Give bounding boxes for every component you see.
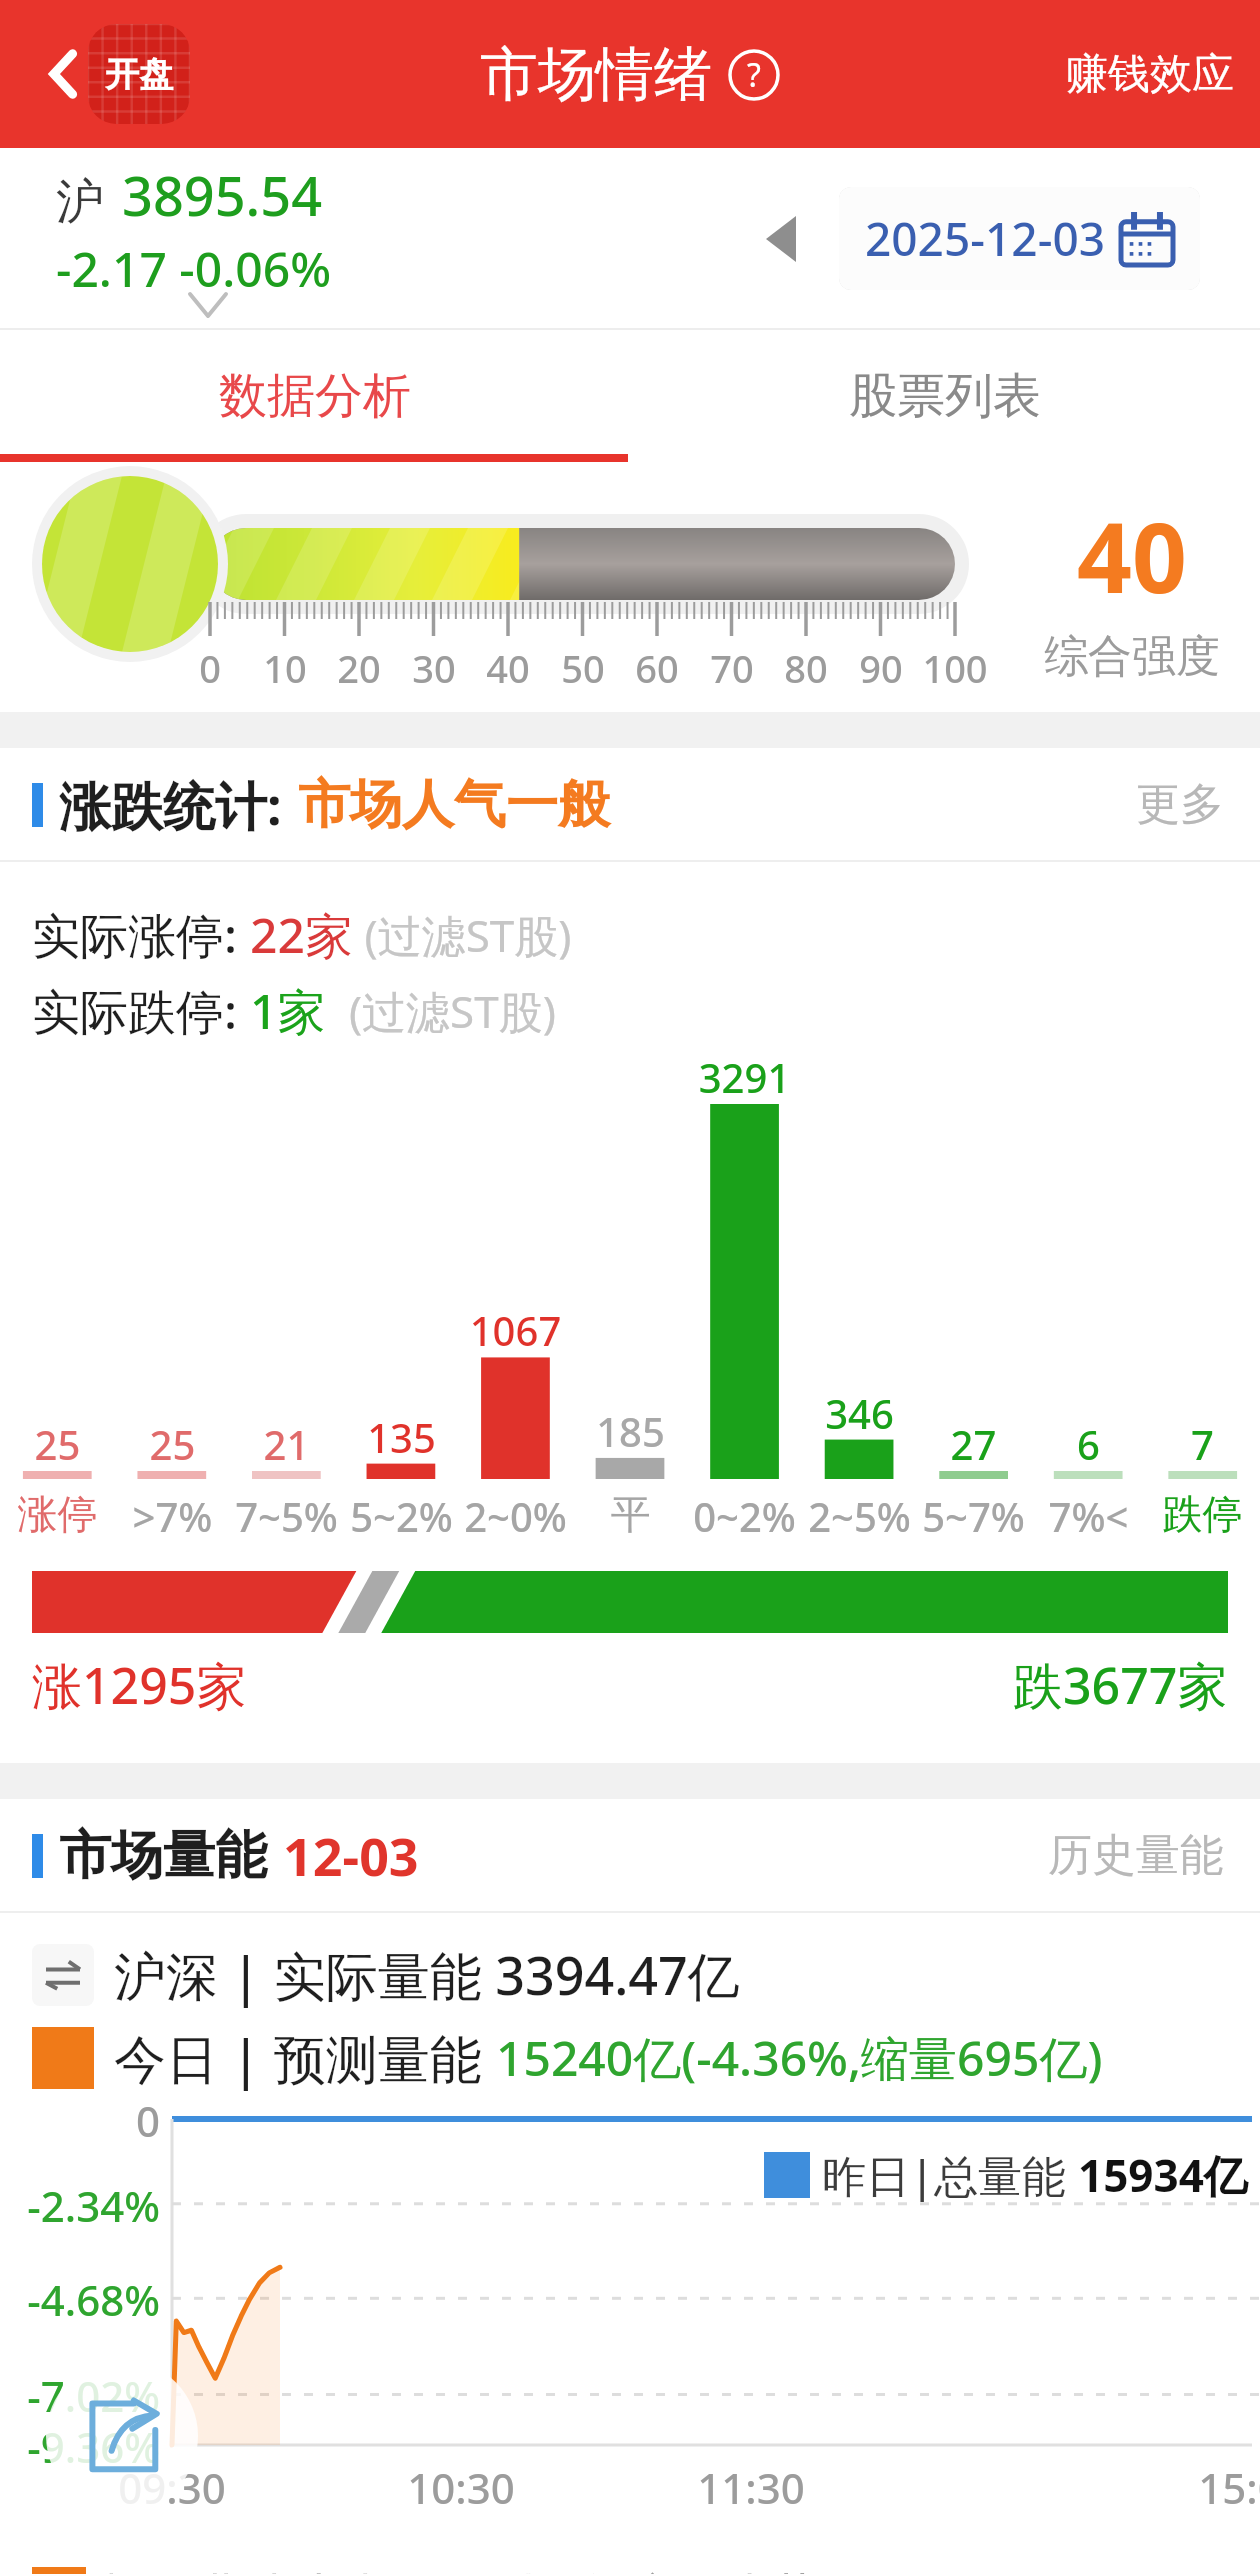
staticText: 09:30 [72, 2459, 272, 2516]
button[interactable]: Back [18, 35, 96, 113]
staticText: 21 [229, 1417, 344, 1471]
staticText: 更多 [1136, 777, 1224, 832]
staticText: 185 [573, 1404, 688, 1458]
staticText: 7~5% [229, 1489, 344, 1543]
staticText: 25 [0, 1417, 115, 1471]
staticText: 25 [115, 1417, 230, 1471]
staticText: 3291 [687, 1050, 802, 1104]
staticText: 开盘 [105, 53, 173, 96]
staticText: 20 [319, 642, 399, 694]
staticText: 历史量能 [1048, 1828, 1224, 1883]
staticText: 3895.54 [122, 158, 323, 232]
staticText: (过滤ST股) [353, 905, 572, 965]
staticText: 10:30 [361, 2459, 561, 2516]
staticText: 22家 [250, 902, 353, 968]
staticText: 1家 [250, 978, 326, 1044]
staticText: 股票列表 [849, 366, 1041, 426]
staticText: -2.34% [0, 2177, 160, 2234]
staticText: 1067 [458, 1303, 573, 1357]
staticText: 市场人气一般 [298, 772, 610, 838]
staticText: 30 [394, 642, 474, 694]
button[interactable]: App icon [88, 24, 190, 124]
staticText: 27 [916, 1417, 1031, 1471]
staticText: 135 [344, 1410, 459, 1464]
staticText: 6 [1031, 1417, 1146, 1471]
staticText: 15934亿 [1078, 2145, 1248, 2205]
staticText: 15240亿(-4.36%,缩量695亿) [496, 2025, 1103, 2091]
staticText: 0~2% [687, 1489, 802, 1543]
staticText: 市场量能 [59, 1823, 267, 1889]
staticText: 70 [692, 642, 772, 694]
button[interactable]: 更多 [1136, 777, 1224, 832]
staticText: 2~5% [802, 1489, 917, 1543]
staticText: 综合强度 [1044, 629, 1220, 684]
button[interactable]: Previous day [749, 207, 813, 271]
staticText: 40 [1077, 490, 1187, 621]
staticText: >7% [115, 1489, 230, 1543]
staticText: 0 [170, 642, 250, 694]
staticText: 2~0% [458, 1489, 573, 1543]
staticText: 市场情绪 [480, 38, 712, 111]
staticText: 涨跌统计: [59, 769, 282, 840]
staticText: 100 [915, 642, 995, 694]
staticText: 涨停 [0, 1489, 115, 1539]
button[interactable]: 2025-12-03 [839, 187, 1200, 290]
staticText: 数据分析 [219, 366, 411, 426]
staticText: -4.68% [0, 2271, 160, 2328]
staticText: 0 [0, 2092, 160, 2149]
staticText: -9.36% [0, 2418, 160, 2475]
staticText: 346 [802, 1386, 917, 1440]
staticText: 50 [543, 642, 623, 694]
staticText: 平 [573, 1489, 688, 1539]
button[interactable]: 赚钱效应 [1066, 48, 1234, 101]
staticText: 90 [841, 642, 921, 694]
button[interactable]: 数据分析 [0, 330, 630, 462]
staticText: 60 [617, 642, 697, 694]
staticText: 10 [245, 642, 325, 694]
staticText: 80 [766, 642, 846, 694]
staticText: 12-03 [283, 1820, 419, 1891]
staticText: 2025-12-03 [865, 207, 1106, 270]
staticText: 实际涨停: [32, 902, 250, 968]
staticText: 7%< [1031, 1489, 1146, 1543]
staticText: 实际跌停: [32, 978, 250, 1044]
staticText: 沪 [56, 172, 104, 232]
staticText: 涨1295家 [32, 1651, 247, 1719]
button[interactable]: Switch market [32, 1944, 94, 2006]
button[interactable]: Share [46, 2360, 198, 2512]
staticText: (过滤ST股) [326, 981, 556, 1041]
staticText: 橙色曲线为当日预测量能变化走势 [102, 2567, 822, 2574]
staticText: -2.17 -0.06% [56, 236, 332, 301]
button[interactable]: Help [728, 49, 780, 101]
staticText: 5~2% [344, 1489, 459, 1543]
staticText: 跌停 [1145, 1489, 1260, 1539]
staticText: -7.02% [0, 2367, 160, 2424]
staticText: 跌3677家 [1013, 1651, 1228, 1719]
staticText: 7 [1145, 1417, 1260, 1471]
staticText: 15:00 [1152, 2459, 1260, 2516]
staticText: 5~7% [916, 1489, 1031, 1543]
button[interactable]: 历史量能 [1048, 1828, 1224, 1883]
staticText: 昨日|总量能 [822, 2145, 1078, 2205]
staticText: 11:30 [651, 2459, 851, 2516]
staticText: 今日 | 预测量能 [114, 2022, 496, 2093]
staticText: ? [747, 53, 761, 97]
staticText: 40 [468, 642, 548, 694]
staticText: 沪深 | 实际量能 3394.47亿 [114, 1939, 740, 2010]
staticText: 赚钱效应 [1066, 48, 1234, 101]
button[interactable]: 股票列表 [630, 330, 1260, 462]
